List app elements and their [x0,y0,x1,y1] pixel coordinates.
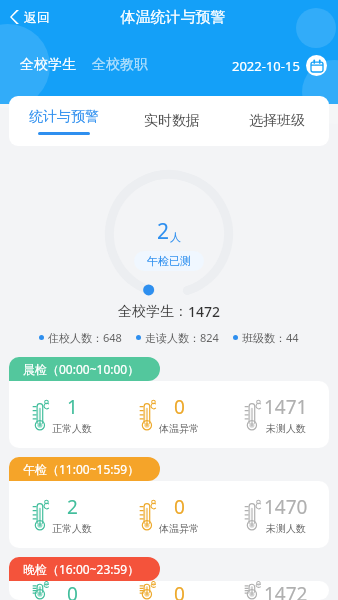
staticText: 0 [174,581,185,600]
staticText: 全校教职 [92,56,148,74]
staticText: 1472 [188,302,221,321]
staticText: 未测人数 [266,522,306,535]
button[interactable]: 全校教职 [92,51,148,79]
staticText: 2 [67,494,78,520]
staticText: 体温异常 [159,422,199,435]
staticText: 晨检（00:00~10:00） [23,361,140,377]
staticText: 晚检（16:00~23:59） [23,561,140,577]
staticText: 1 [67,394,78,420]
staticText: 1471 [264,394,308,420]
staticText: 1472 [264,581,308,600]
staticText: 全校学生： [118,303,188,321]
staticText: 统计与预警 [29,108,99,126]
staticText: 0 [174,394,185,420]
button[interactable]: 2022-10-15 [232,52,327,79]
staticText: 班级数：44 [242,330,299,345]
staticText: 午检（11:00~15:59） [23,461,140,477]
button[interactable]: 全校学生 [20,51,76,79]
staticText: 实时数据 [144,112,200,130]
staticText: 1470 [264,494,308,520]
staticText: 正常人数 [52,422,92,435]
staticText: 人 [170,230,181,244]
staticText: 体温异常 [159,522,199,535]
button[interactable]: 实时数据 [119,96,224,146]
staticText: 返回 [24,9,50,25]
staticText: 未测人数 [266,422,306,435]
button[interactable]: 返回 [0,3,60,31]
staticText: 住校人数：648 [48,330,122,345]
other: Select date [306,55,327,76]
button[interactable]: 1 [9,381,329,448]
staticText: 2022-10-15 [232,57,300,75]
staticText: 0 [67,581,78,600]
button[interactable]: 2 [9,481,329,548]
button[interactable]: 统计与预警 [9,96,119,146]
staticText: 选择班级 [249,112,305,130]
staticText: 午检已测 [147,254,191,268]
staticText: 正常人数 [52,522,92,535]
staticText: 走读人数：824 [145,330,219,345]
button[interactable]: 0 [9,581,329,600]
staticText: 体温统计与预警 [34,8,312,27]
staticText: 0 [174,494,185,520]
button[interactable]: 选择班级 [224,96,329,146]
staticText: 全校学生 [20,56,76,74]
staticText: 2 [157,217,170,246]
